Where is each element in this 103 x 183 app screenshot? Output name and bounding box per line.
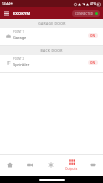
staticText: ON bbox=[90, 61, 96, 65]
button[interactable]: Outputs bbox=[61, 154, 82, 176]
staticText: POINT 1 bbox=[13, 30, 25, 34]
staticText: POINT 2 bbox=[13, 57, 25, 61]
button[interactable]: CONNECTED bbox=[72, 10, 100, 17]
staticText: Garage bbox=[13, 35, 27, 40]
button[interactable]: POINT 2 bbox=[0, 55, 103, 73]
staticText: EXOKYM bbox=[13, 11, 31, 16]
button[interactable]: POINT 1 bbox=[0, 28, 103, 46]
staticText: BACK DOOR bbox=[40, 48, 63, 53]
button[interactable]: Cameras bbox=[20, 154, 40, 176]
staticText: 41% bbox=[90, 2, 96, 6]
button[interactable]: ON bbox=[88, 60, 98, 65]
staticText: Sprinkler bbox=[13, 62, 30, 67]
button[interactable]: More bbox=[82, 154, 103, 176]
button[interactable]: ON bbox=[88, 33, 98, 38]
staticText: Outputs bbox=[65, 167, 78, 171]
button[interactable]: Home bbox=[0, 154, 20, 176]
staticText: CONNECTED bbox=[75, 12, 94, 16]
button[interactable]: Open navigation menu bbox=[2, 9, 10, 17]
staticText: GARAGE DOOR bbox=[38, 21, 66, 26]
button[interactable]: Sensors bbox=[40, 154, 61, 176]
staticText: ON bbox=[90, 34, 96, 38]
staticText: 14:44 bbox=[2, 2, 11, 6]
